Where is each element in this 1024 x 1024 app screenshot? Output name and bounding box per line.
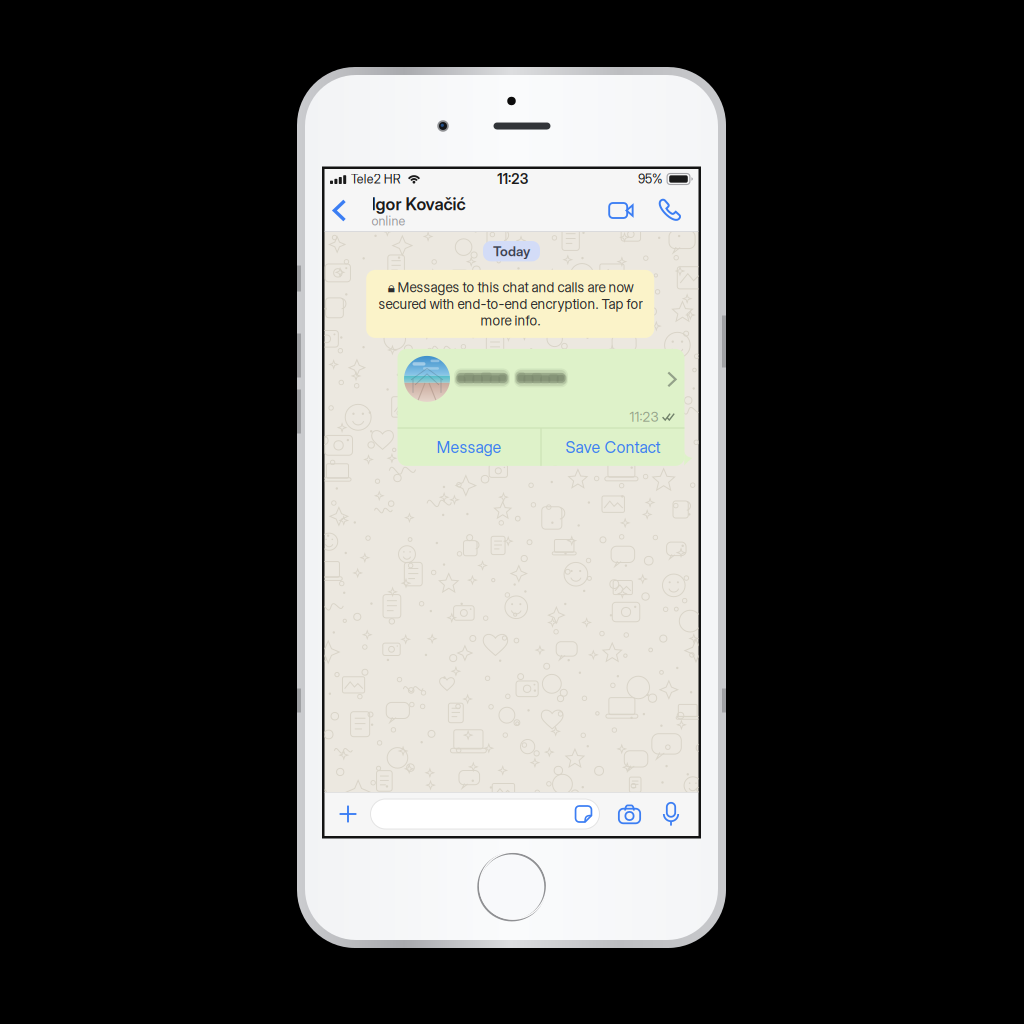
staticText: Save Contact [565, 437, 660, 457]
staticText: Tele2 HR [351, 171, 401, 186]
staticText: Today [493, 243, 530, 259]
button[interactable]: Save Contact [541, 428, 684, 466]
button[interactable]: Attach [330, 792, 375, 836]
staticText: 11:23 [629, 409, 658, 425]
button[interactable]: Stickers [569, 801, 595, 827]
button[interactable]: Camera [604, 792, 649, 836]
button[interactable]: Voice call [647, 189, 691, 232]
staticText: Igor Kovačić [371, 194, 465, 214]
button[interactable]: Message [397, 428, 541, 466]
button[interactable]: 🔒︎ Messages to this chat and calls are n… [367, 270, 655, 338]
staticText: 95% [638, 171, 663, 186]
button[interactable]: Back [324, 189, 354, 232]
button[interactable]: Video call [595, 189, 647, 232]
button[interactable]: Open shared contact [397, 355, 684, 403]
staticText: online [371, 213, 405, 229]
staticText: 🔒︎ Messages to this chat and calls are n… [378, 279, 642, 329]
staticText: Message [437, 437, 502, 457]
button[interactable]: Voice message [649, 792, 690, 836]
staticText: 11:23 [497, 170, 529, 187]
